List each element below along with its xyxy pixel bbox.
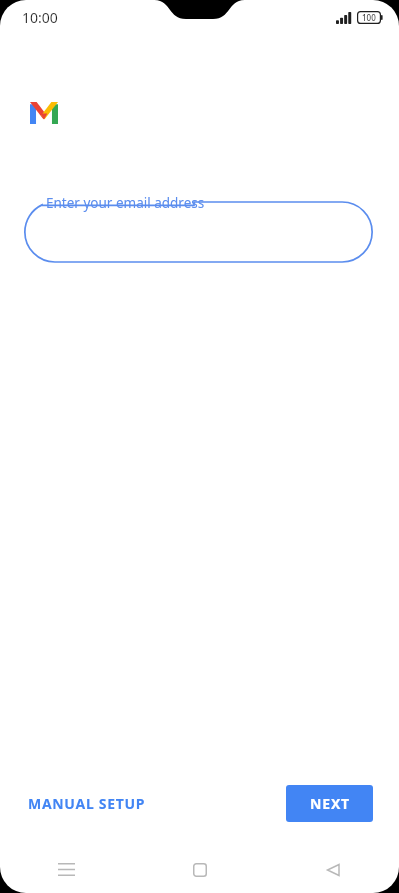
button[interactable]: Enter your email address (24, 194, 373, 262)
button[interactable]: Back (266, 846, 399, 893)
button[interactable]: NEXT (286, 785, 373, 822)
staticText: 10:00 (22, 8, 58, 27)
staticText: MANUAL SETUP (28, 794, 146, 813)
staticText: Enter your email address (46, 194, 205, 212)
button[interactable]: Home (133, 846, 266, 893)
staticText: 100 (362, 12, 376, 23)
button[interactable]: MANUAL SETUP (26, 786, 148, 821)
button[interactable]: Recent apps (0, 846, 133, 893)
staticText: NEXT (310, 794, 350, 813)
